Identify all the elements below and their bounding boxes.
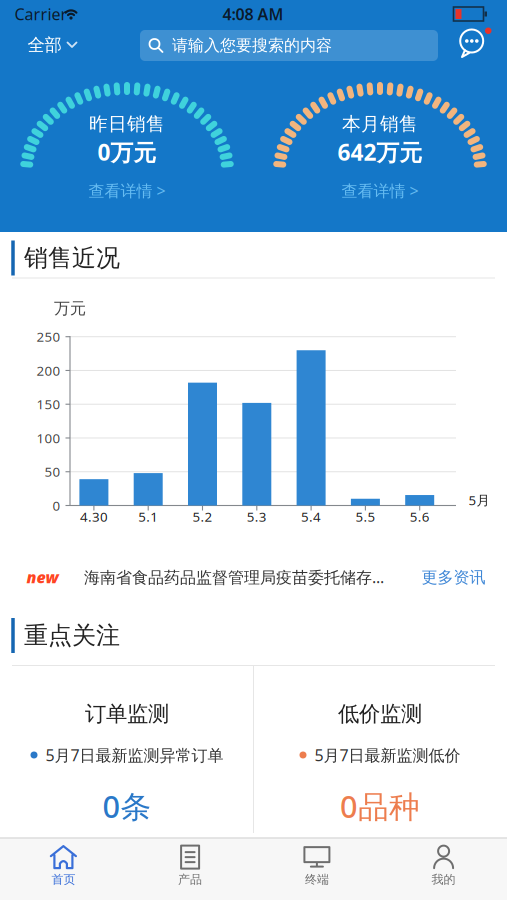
- staticText: 0万元: [97, 137, 156, 167]
- staticText: 终端: [305, 872, 329, 887]
- staticText: 4:08 AM: [222, 3, 283, 25]
- button[interactable]: 终端: [254, 836, 380, 894]
- button[interactable]: new: [25, 559, 425, 595]
- staticText: 5月: [468, 491, 489, 509]
- button[interactable]: 全部: [27, 34, 76, 56]
- staticText: 首页: [51, 872, 75, 887]
- staticText: 销售近况: [24, 243, 120, 273]
- staticText: 100: [36, 429, 60, 447]
- staticText: 5.4: [301, 508, 321, 525]
- staticText: Carrier: [14, 3, 67, 25]
- staticText: 海南省食品药品监督管理局疫苗委托储存...: [84, 566, 384, 588]
- button[interactable]: 首页: [0, 836, 126, 894]
- staticText: 5月7日最新监测异常订单: [45, 744, 223, 766]
- staticText: 查看详情 >: [341, 180, 418, 201]
- button[interactable]: 我的: [381, 836, 507, 894]
- staticText: 全部: [27, 34, 61, 56]
- staticText: 0条: [102, 786, 151, 826]
- staticText: 查看详情 >: [88, 180, 165, 201]
- staticText: 0: [52, 497, 60, 514]
- staticText: 200: [36, 362, 60, 379]
- button[interactable]: 查看详情 >: [341, 180, 418, 201]
- button[interactable]: 请输入您要搜索的内容: [140, 30, 438, 61]
- staticText: 5.5: [355, 508, 375, 525]
- staticText: 0品种: [340, 786, 420, 826]
- button[interactable]: 更多资讯: [421, 568, 485, 587]
- button[interactable]: 消息: [454, 27, 492, 61]
- staticText: 我的: [432, 872, 456, 887]
- staticText: 本月销售: [342, 112, 418, 135]
- staticText: new: [26, 566, 58, 588]
- staticText: 重点关注: [24, 621, 120, 650]
- staticText: 5月7日最新监测低价: [314, 744, 460, 766]
- staticText: 4.30: [80, 508, 108, 525]
- staticText: 低价监测: [338, 701, 422, 727]
- staticText: 5.1: [138, 508, 158, 525]
- staticText: 万元: [54, 299, 86, 318]
- staticText: 5.6: [410, 508, 430, 525]
- staticText: 50: [44, 463, 60, 480]
- staticText: 产品: [178, 872, 202, 887]
- staticText: 昨日销售: [89, 112, 165, 135]
- button[interactable]: 查看详情 >: [88, 180, 165, 201]
- staticText: 642万元: [337, 137, 422, 167]
- staticText: 5.2: [192, 508, 212, 525]
- staticText: 请输入您要搜索的内容: [172, 36, 332, 55]
- staticText: 150: [36, 395, 60, 413]
- button[interactable]: 产品: [127, 836, 253, 894]
- staticText: 更多资讯: [421, 568, 485, 587]
- staticText: 250: [36, 328, 60, 345]
- staticText: 订单监测: [85, 701, 169, 727]
- staticText: 5.3: [247, 508, 267, 525]
